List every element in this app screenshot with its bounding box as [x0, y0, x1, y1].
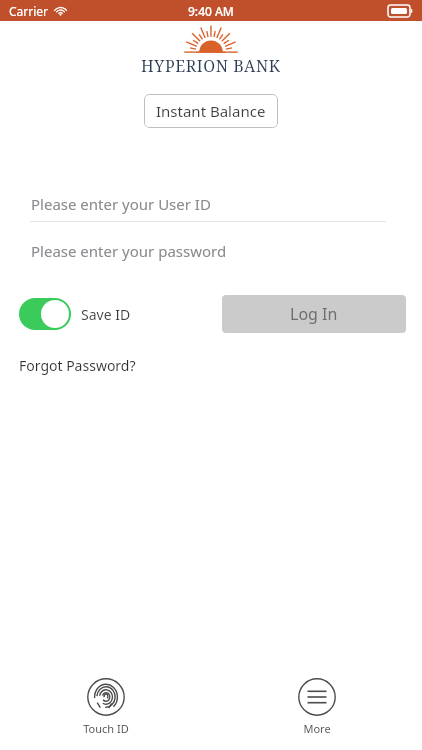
staticText: HYPERION BANK	[141, 55, 281, 77]
staticText: Carrier	[9, 3, 49, 19]
button[interactable]: Instant Balance	[144, 94, 278, 128]
staticText: Instant Balance	[156, 101, 266, 121]
staticText: Log In	[290, 303, 338, 325]
button[interactable]: Log In	[222, 295, 406, 333]
button[interactable]: More	[288, 676, 346, 738]
staticText: Touch ID	[83, 721, 129, 736]
staticText: Please enter your User ID	[31, 194, 211, 214]
staticText: Forgot Password?	[19, 356, 136, 375]
button[interactable]: Please enter your User ID	[0, 187, 422, 222]
button[interactable]: Forgot Password?	[19, 354, 136, 377]
button[interactable]: Touch ID	[73, 676, 139, 738]
staticText: Save ID	[81, 305, 131, 324]
staticText: 9:40 AM	[188, 3, 234, 19]
button[interactable]: Please enter your password	[0, 234, 422, 268]
staticText: Please enter your password	[31, 241, 227, 261]
button[interactable]: Save ID	[19, 298, 131, 330]
staticText: More	[303, 721, 331, 736]
